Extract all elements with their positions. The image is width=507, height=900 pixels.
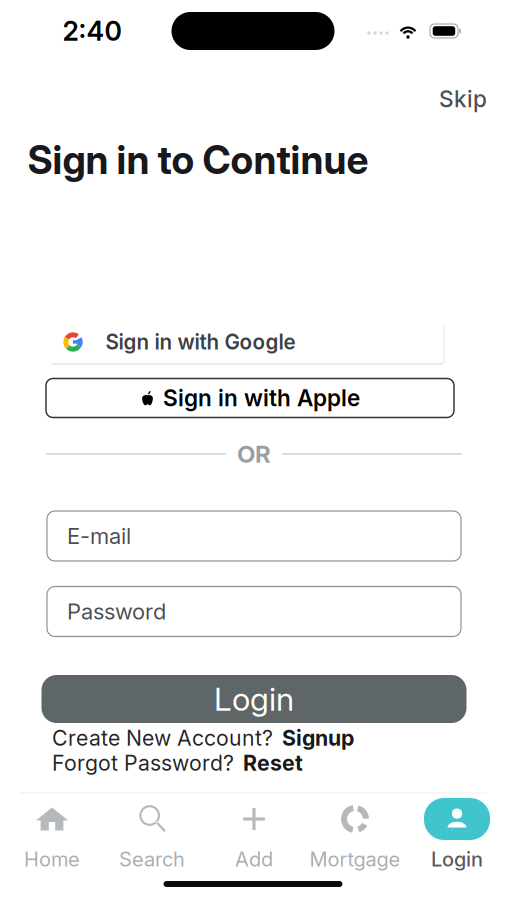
staticText: E-mail	[67, 523, 131, 549]
staticText: Sign in to Continue	[27, 137, 368, 183]
button[interactable]: Mortgage	[304, 794, 405, 888]
staticText: Login	[431, 847, 483, 871]
staticText: OR	[237, 439, 271, 468]
button[interactable]: Skip	[428, 82, 498, 116]
staticText: Home	[24, 847, 80, 871]
staticText: Sign in with Google	[105, 329, 295, 354]
staticText: Skip	[439, 85, 487, 113]
staticText: Password	[67, 598, 166, 625]
staticText: Forgot Password?	[52, 750, 234, 776]
button[interactable]: Sign in with Apple	[46, 378, 454, 417]
staticText: Signup	[282, 725, 354, 751]
button[interactable]: Login	[41, 675, 466, 723]
button[interactable]: Add	[203, 794, 304, 888]
staticText: Create New Account?	[52, 725, 273, 751]
staticText: Add	[235, 847, 273, 871]
staticText: Sign in with Apple	[163, 384, 360, 412]
staticText: 2:40	[62, 15, 121, 47]
button[interactable]: Forgot Password?	[52, 751, 382, 775]
button[interactable]: Create New Account?	[52, 726, 382, 750]
staticText: Reset	[243, 750, 303, 776]
staticText: Login	[214, 680, 294, 718]
staticText: Search	[119, 847, 185, 871]
button[interactable]: Search	[101, 794, 202, 888]
button[interactable]: Login	[406, 794, 507, 888]
button[interactable]: Sign in with Google	[48, 321, 443, 363]
button[interactable]: Home	[1, 794, 102, 888]
staticText: Mortgage	[309, 847, 400, 871]
